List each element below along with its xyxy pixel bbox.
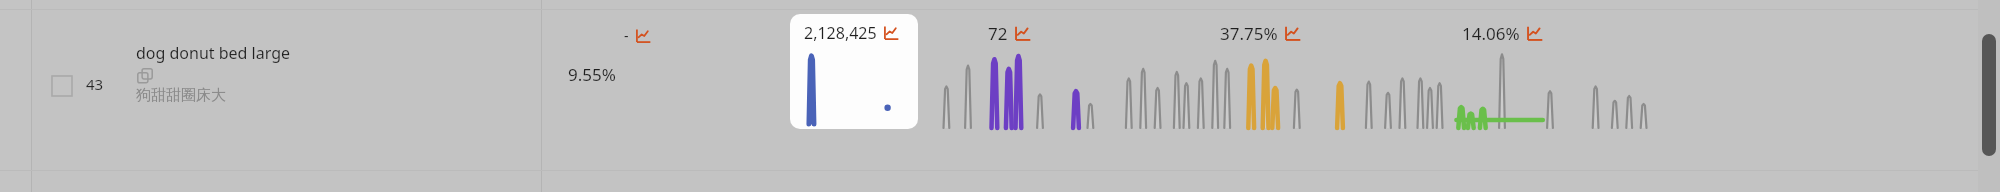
button[interactable]: dog donut bed large bbox=[136, 42, 291, 64]
button[interactable]: 14.06% bbox=[1462, 22, 1543, 45]
staticText: 狗甜甜圈床大 bbox=[136, 86, 226, 105]
button[interactable]: Select row bbox=[48, 72, 76, 100]
button[interactable]: Open trend chart bbox=[635, 28, 651, 44]
staticText: 2,128,425 bbox=[804, 22, 877, 44]
staticText: 72 bbox=[988, 22, 1008, 45]
staticText: 9.55% bbox=[568, 63, 616, 86]
button[interactable]: Copy bbox=[136, 67, 154, 85]
other: Scroll bbox=[1982, 34, 1996, 156]
staticText: 43 bbox=[86, 74, 104, 94]
staticText: 37.75% bbox=[1220, 22, 1278, 45]
staticText: - bbox=[624, 26, 629, 45]
button[interactable]: 72 bbox=[988, 22, 1031, 45]
other: Open trend chart bbox=[883, 25, 899, 41]
button[interactable]: 2,128,425 bbox=[790, 14, 918, 129]
other: Open trend chart bbox=[1284, 25, 1301, 42]
button[interactable]: 37.75% bbox=[1220, 22, 1301, 45]
other: Open trend chart bbox=[1526, 25, 1543, 42]
staticText: 14.06% bbox=[1462, 22, 1520, 45]
other: Open trend chart bbox=[1014, 25, 1031, 42]
